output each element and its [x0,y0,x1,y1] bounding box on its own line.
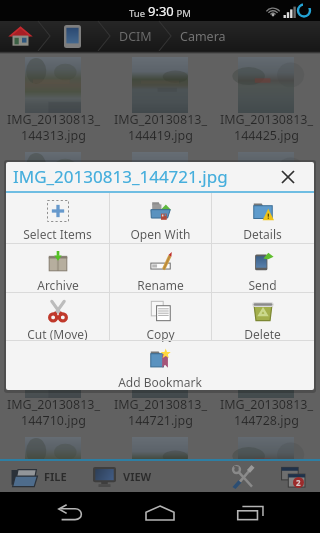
staticText: DCIM [119,28,152,45]
button[interactable]: Tools [224,461,260,492]
button[interactable]: DCIM [112,21,159,51]
button[interactable]: Close [271,162,305,191]
staticText: IMG_20130813_ 144710.jpg [0,396,107,429]
button[interactable]: Copy [109,293,212,340]
staticText: IMG_20130813_ 144621.jpg [107,301,214,334]
button[interactable]: Delete [211,293,314,340]
button[interactable]: IMG_20130813_ 144810.jpg [0,437,107,525]
staticText: IMG_20130813_ 144821.jpg [107,491,214,524]
staticText: Open With [130,226,191,242]
staticText: Send [248,277,277,293]
button[interactable]: Archive [6,244,109,292]
staticText: VIEW [123,469,152,484]
staticText: Camera [180,28,226,45]
staticText: IMG_20130813_ 144628.jpg [213,301,320,334]
staticText: Details [243,226,282,242]
staticText: FILE [44,469,67,484]
button[interactable]: Home [2,21,38,51]
button[interactable]: Device storage [56,21,89,51]
staticText: 2 [296,477,301,488]
button[interactable]: IMG_20130813_ 144628.jpg [213,247,320,335]
staticText: IMG_20130813_ 144510.jpg [0,206,107,239]
staticText: IMG_20130813_ 144313.jpg [0,111,107,144]
staticText: Rename [137,277,184,293]
button[interactable]: IMG_20130813_ 144710.jpg [0,342,107,430]
staticText: IMG_20130813_ 144425.jpg [213,111,320,144]
button[interactable]: IMG_20130813_ 144521.jpg [107,152,214,240]
button[interactable]: Rename [109,244,212,292]
button[interactable]: Recents [230,492,270,533]
button[interactable]: IMG_20130813_ 144313.jpg [0,57,107,145]
button[interactable]: IMG_20130813_ 144721.jpg [107,342,214,430]
staticText: IMG_20130813_ 144419.jpg [107,111,214,144]
button[interactable]: IMG_20130813_ 144425.jpg [213,57,320,145]
staticText: Add Bookmark [118,374,202,390]
button[interactable]: IMG_20130813_ 144510.jpg [0,152,107,240]
button[interactable]: IMG_20130813_ 144529.jpg [213,152,320,240]
button[interactable]: IMG_20130813_ 144610.jpg [0,247,107,335]
button[interactable]: Open With [109,193,212,243]
button[interactable]: FILE [11,461,67,492]
staticText: Tue [129,7,148,20]
button[interactable]: VIEW [93,461,152,492]
staticText: IMG_20130813_ 144529.jpg [213,206,320,239]
button[interactable]: IMG_20130813_ 144621.jpg [107,247,214,335]
button[interactable]: Windows [275,461,311,492]
button[interactable]: Back [50,492,90,533]
staticText: IMG_20130813_ 144521.jpg [107,206,214,239]
staticText: IMG_20130813_ 144728.jpg [213,396,320,429]
button[interactable]: Add Bookmark [6,341,314,390]
staticText: IMG_20130813_ 144610.jpg [0,301,107,334]
button[interactable]: Cut (Move) [6,293,109,340]
button[interactable]: IMG_20130813_ 144419.jpg [107,57,214,145]
button[interactable]: Details [211,193,314,243]
button[interactable]: Home [140,492,180,533]
staticText: Copy [146,326,175,342]
staticText: IMG_20130813_ 144828.jpg [213,491,320,524]
staticText: Archive [37,277,79,293]
button[interactable]: Select Items [6,193,109,243]
button[interactable]: IMG_20130813_ 144728.jpg [213,342,320,430]
button[interactable]: Camera [173,21,233,51]
button[interactable]: IMG_20130813_ 144828.jpg [213,437,320,525]
staticText: Select Items [23,226,92,242]
button[interactable]: IMG_20130813_ 144821.jpg [107,437,214,525]
staticText: IMG_20130813_ 144721.jpg [107,396,214,429]
button[interactable]: Send [211,244,314,292]
staticText: Delete [244,326,281,342]
staticText: Cut (Move) [27,326,88,342]
staticText: IMG_20130813_144721.jpg [13,165,228,188]
staticText: IMG_20130813_ 144810.jpg [0,491,107,524]
staticText: 9:30 [148,2,174,20]
staticText: PM [174,7,191,20]
